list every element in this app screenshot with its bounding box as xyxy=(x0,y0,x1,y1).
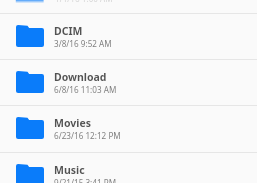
button[interactable]: DCIM xyxy=(0,13,257,59)
button[interactable]: Alarms xyxy=(0,0,257,12)
staticText: 1/1/16 1:00 AM xyxy=(55,0,113,4)
staticText: Music xyxy=(54,163,85,177)
button[interactable]: Music xyxy=(0,152,257,183)
staticText: 3/8/16 9:52 AM xyxy=(54,38,112,49)
staticText: 9/21/15 3:41 PM xyxy=(54,177,117,183)
button[interactable]: Download xyxy=(0,59,257,105)
staticText: Download xyxy=(54,70,107,84)
button[interactable]: Movies xyxy=(0,105,257,151)
staticText: Movies xyxy=(54,116,91,130)
staticText: DCIM xyxy=(54,24,83,38)
staticText: 1/1/16 1:00 AM xyxy=(54,0,112,2)
staticText: 6/23/16 12:12 PM xyxy=(54,130,121,141)
staticText: 6/8/16 11:03 AM xyxy=(54,84,117,95)
